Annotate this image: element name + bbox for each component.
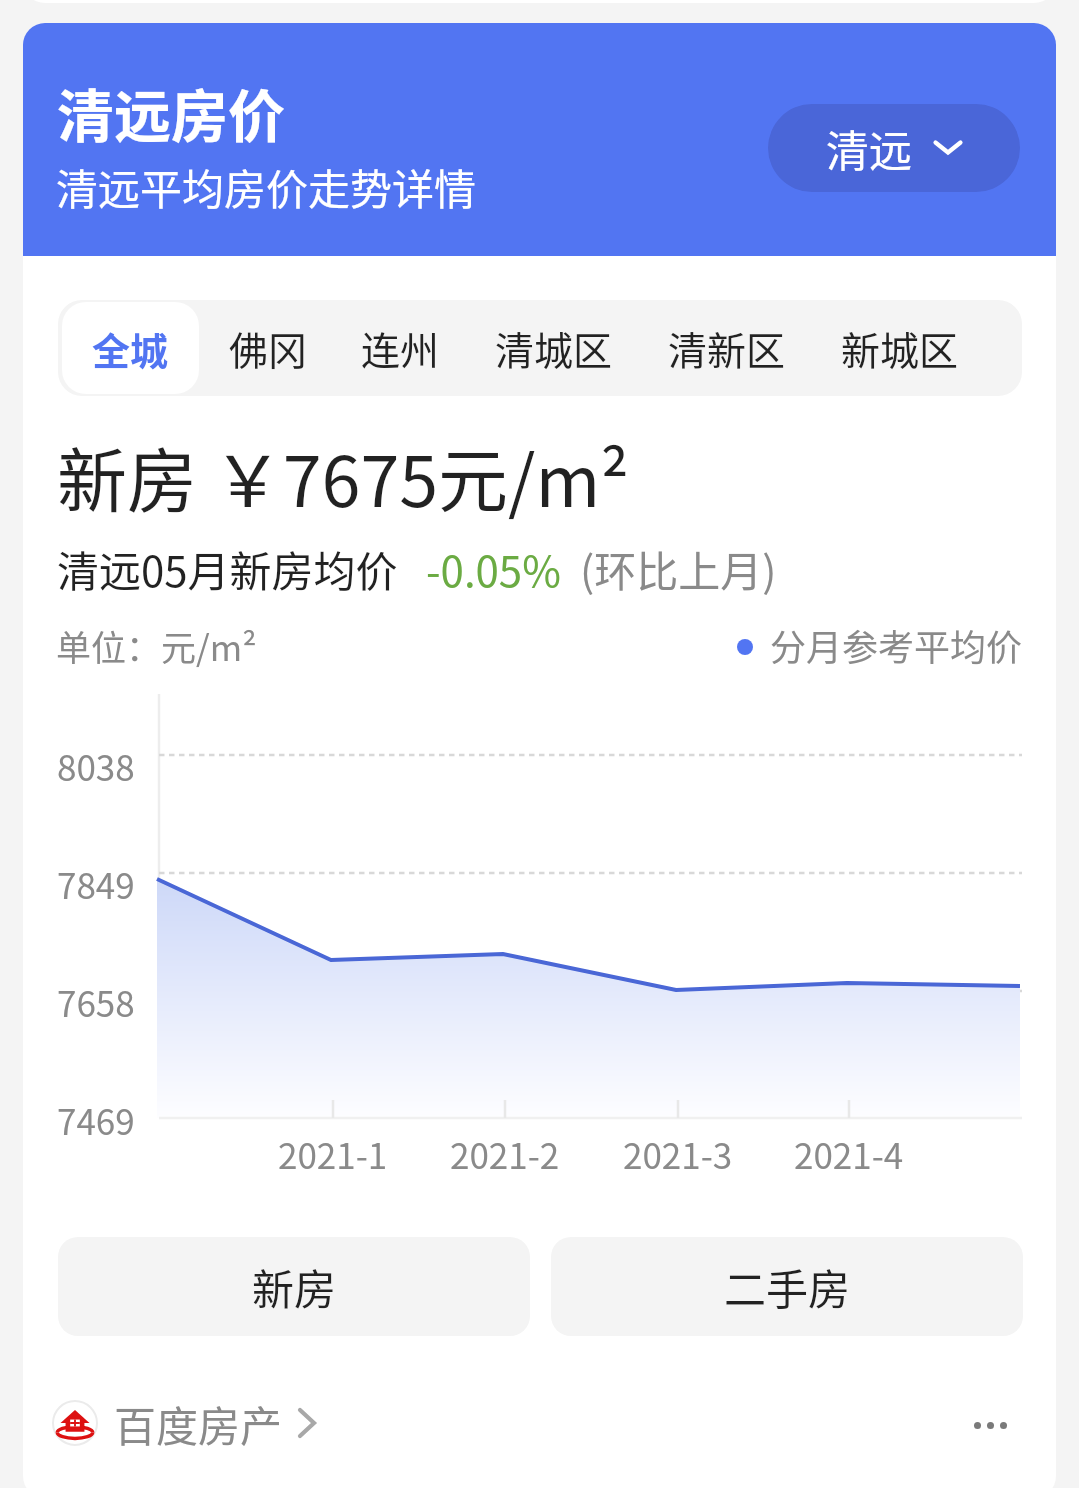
button[interactable]: 佛冈: [176, 302, 360, 394]
button[interactable]: 新城区: [770, 302, 1030, 394]
button[interactable]: More options: [968, 1403, 1012, 1447]
button[interactable]: 清新区: [597, 302, 857, 394]
staticText: 连州: [361, 320, 440, 376]
staticText: 2021-1: [278, 1128, 388, 1179]
button[interactable]: 连州: [308, 302, 492, 394]
button[interactable]: 清城区: [424, 302, 684, 394]
staticText: 清远房价: [57, 71, 285, 154]
staticText: 8038: [57, 740, 135, 791]
staticText: 2021-2: [450, 1128, 560, 1179]
staticText: -0.05%: [426, 538, 561, 599]
button[interactable]: 清远: [768, 104, 1020, 192]
button[interactable]: 新房: [58, 1237, 530, 1336]
staticText: 分月参考平均价: [770, 619, 1023, 671]
staticText: 7658: [57, 976, 135, 1027]
staticText: 佛冈: [229, 320, 308, 376]
button[interactable]: 二手房: [551, 1237, 1023, 1336]
staticText: 7849: [57, 858, 135, 909]
staticText: (环比上月): [580, 538, 777, 599]
staticText: 2021-3: [623, 1128, 733, 1179]
staticText: 清城区: [495, 320, 613, 376]
staticText: 新房 ￥7675元/m²: [57, 426, 630, 527]
button[interactable]: 百度房产: [52, 1378, 317, 1468]
staticText: 清远: [826, 117, 912, 179]
staticText: 单位：元/m²: [56, 620, 257, 671]
staticText: 7469: [57, 1094, 135, 1145]
staticText: 2021-4: [794, 1128, 904, 1179]
staticText: 新房: [252, 1256, 337, 1317]
staticText: 百度房产: [114, 1393, 283, 1454]
staticText: 清远平均房价走势详情: [56, 156, 477, 217]
staticText: 清新区: [668, 320, 786, 376]
staticText: 清远05月新房均价: [57, 538, 398, 599]
staticText: 新城区: [841, 320, 959, 376]
staticText: 全城: [92, 321, 169, 376]
button[interactable]: 全城: [62, 302, 199, 394]
staticText: 二手房: [724, 1256, 851, 1317]
